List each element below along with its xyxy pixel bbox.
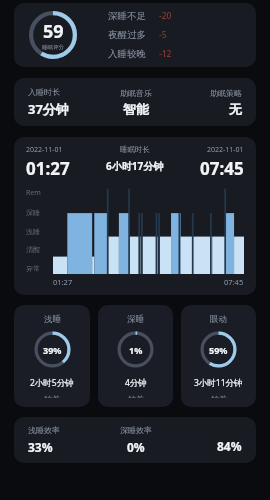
staticText: 01:27 bbox=[26, 157, 70, 180]
staticText: -12 bbox=[159, 48, 172, 60]
staticText: 眼动 bbox=[210, 314, 227, 325]
staticText: 84% bbox=[217, 438, 242, 454]
staticText: Rem bbox=[26, 188, 41, 198]
staticText: 较差 bbox=[128, 394, 144, 398]
button[interactable]: 入睡时长 bbox=[14, 78, 256, 126]
staticText: 入睡时长 bbox=[28, 87, 60, 97]
staticText: 39% bbox=[43, 344, 62, 356]
staticText: 智能 bbox=[123, 101, 149, 117]
staticText: 无 bbox=[229, 101, 242, 117]
staticText: 入睡较晚 bbox=[108, 48, 146, 60]
staticText: 助眠策略 bbox=[210, 88, 242, 98]
staticText: 夜醒过多 bbox=[108, 29, 146, 41]
staticText: 深睡不足 bbox=[108, 10, 146, 22]
staticText: 浅睡 bbox=[44, 314, 61, 325]
staticText: 睡眠评分 bbox=[42, 44, 64, 51]
staticText: 37分钟 bbox=[28, 100, 69, 118]
staticText: 0% bbox=[127, 439, 145, 455]
staticText: 异常 bbox=[26, 264, 40, 273]
staticText: 01:27 bbox=[53, 277, 73, 287]
staticText: -20 bbox=[159, 10, 172, 22]
button[interactable]: 眼动 bbox=[181, 305, 256, 407]
staticText: 浅睡 bbox=[26, 227, 40, 236]
button[interactable]: 2022-11-01 bbox=[14, 137, 256, 295]
staticText: 4分钟 bbox=[125, 377, 147, 389]
staticText: 较差 bbox=[211, 394, 227, 398]
staticText: 深睡 bbox=[26, 208, 40, 217]
staticText: 助眠音乐 bbox=[120, 88, 152, 98]
staticText: 07:45 bbox=[224, 277, 244, 287]
staticText: -5 bbox=[159, 29, 167, 41]
staticText: 深睡效率 bbox=[120, 425, 152, 435]
staticText: 59% bbox=[209, 344, 228, 356]
button[interactable]: 59 bbox=[14, 3, 256, 67]
staticText: 深睡 bbox=[127, 314, 144, 325]
staticText: 2022-11-01 bbox=[207, 145, 244, 155]
staticText: 3小时11分钟 bbox=[194, 377, 243, 389]
button[interactable]: 浅睡 bbox=[14, 305, 90, 407]
staticText: 清醒 bbox=[26, 245, 40, 254]
staticText: 07:45 bbox=[200, 157, 244, 180]
staticText: 59 bbox=[43, 19, 64, 44]
staticText: 2小时5分钟 bbox=[30, 377, 74, 389]
staticText: 睡眠时长 bbox=[120, 145, 150, 154]
staticText: 2022-11-01 bbox=[26, 145, 63, 155]
staticText: 6小时17分钟 bbox=[106, 159, 164, 173]
staticText: 浅睡效率 bbox=[28, 425, 60, 435]
staticText: 33% bbox=[28, 439, 53, 455]
button[interactable]: 浅睡效率 bbox=[14, 417, 256, 463]
staticText: 较差 bbox=[44, 394, 60, 398]
button[interactable]: 深睡 bbox=[98, 305, 173, 407]
staticText: 1% bbox=[129, 344, 143, 356]
